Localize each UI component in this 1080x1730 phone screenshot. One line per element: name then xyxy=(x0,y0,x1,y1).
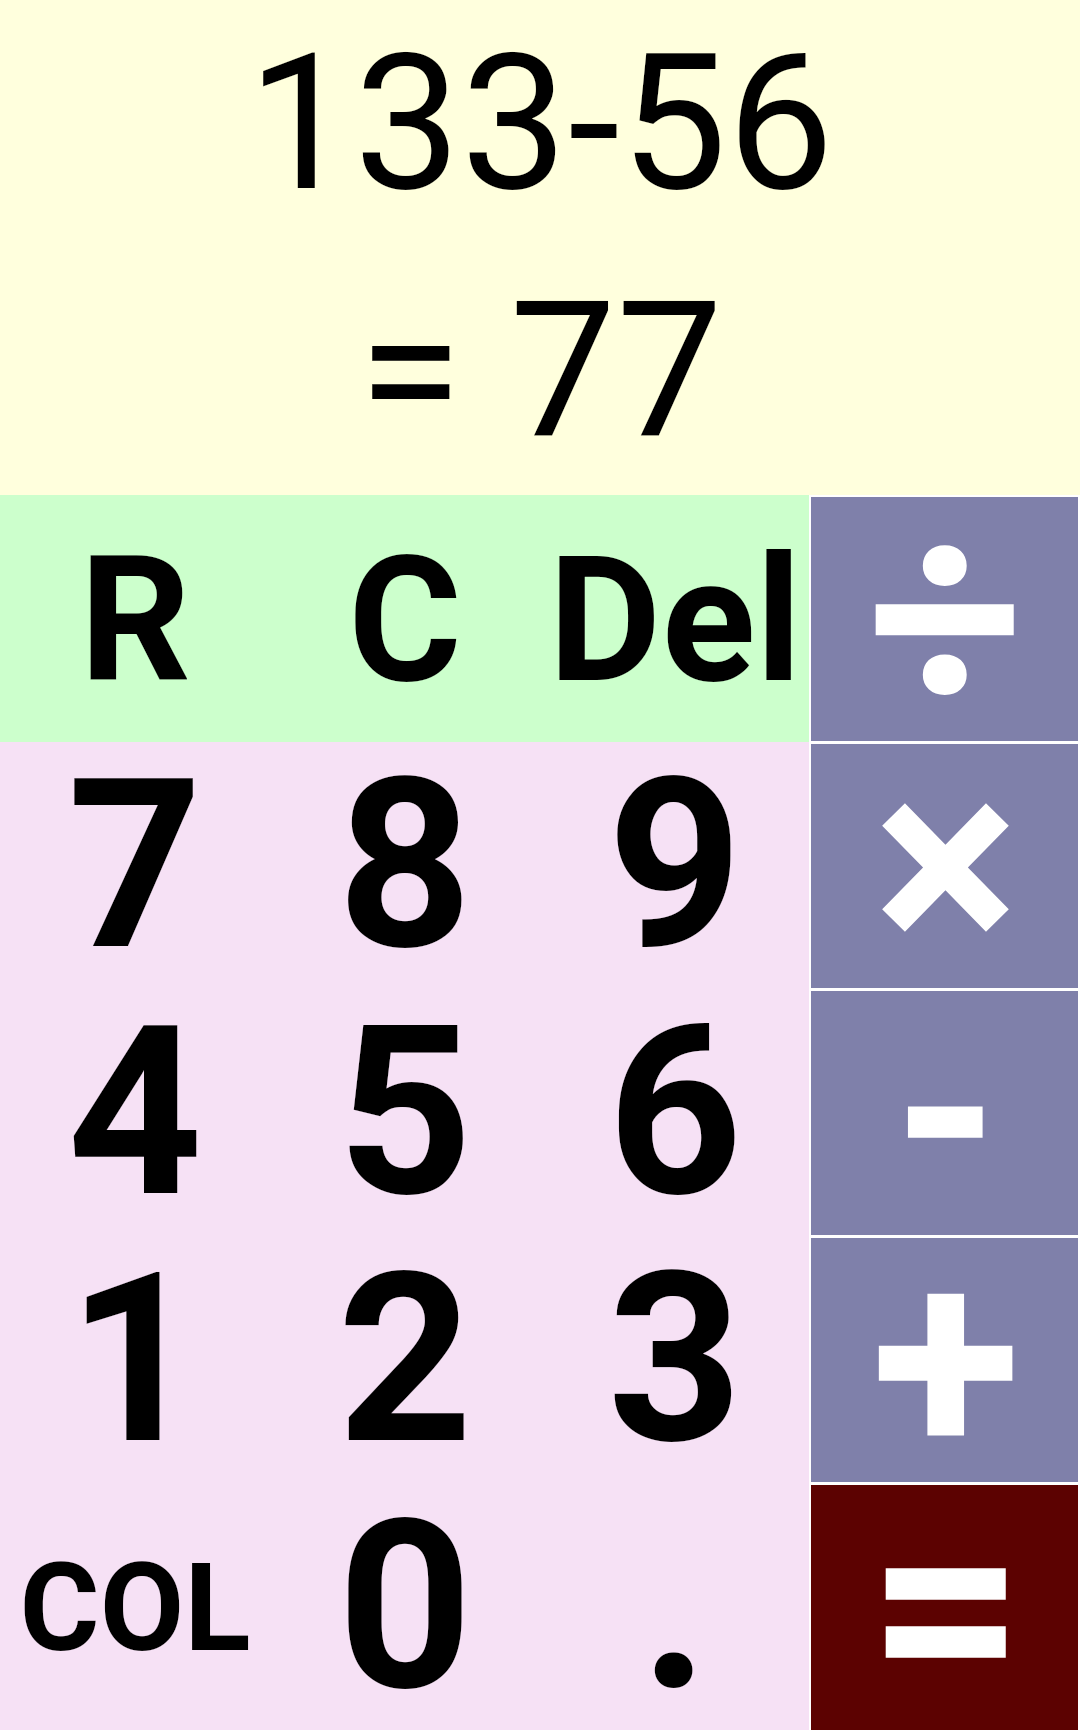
button[interactable]: 8 xyxy=(270,742,540,989)
staticText: 0 xyxy=(337,1468,473,1730)
staticText: = 77 xyxy=(358,260,723,483)
button[interactable]: Divide xyxy=(811,495,1080,742)
staticText: Del xyxy=(548,519,802,723)
button[interactable]: 6 xyxy=(540,989,809,1236)
staticText: - xyxy=(893,953,999,1272)
button[interactable]: Equals xyxy=(811,1483,1080,1730)
button[interactable]: 4 xyxy=(0,989,270,1236)
button[interactable]: 1 xyxy=(0,1236,270,1483)
staticText: C xyxy=(348,519,462,723)
staticText: 2 xyxy=(337,1221,473,1498)
staticText: 7 xyxy=(67,727,203,1004)
staticText: 133-56 xyxy=(247,12,834,235)
staticText: 4 xyxy=(67,974,203,1251)
staticText: 9 xyxy=(607,727,743,1004)
staticText: × xyxy=(873,706,1019,1026)
button[interactable]: 5 xyxy=(270,989,540,1236)
staticText: 3 xyxy=(607,1221,743,1498)
button[interactable]: Del xyxy=(540,495,809,742)
button[interactable]: 0 xyxy=(270,1483,540,1730)
staticText: 8 xyxy=(337,727,473,1004)
staticText: 1 xyxy=(67,1221,203,1498)
button[interactable]: Multiply xyxy=(811,742,1080,989)
button[interactable]: R xyxy=(0,495,270,742)
staticText: R xyxy=(79,519,191,723)
button[interactable]: . xyxy=(540,1483,809,1730)
staticText: 5 xyxy=(337,974,473,1251)
staticText: 6 xyxy=(607,974,743,1251)
button[interactable]: C xyxy=(270,495,540,742)
staticText: COL xyxy=(19,1536,251,1680)
button[interactable]: Subtract xyxy=(811,989,1080,1236)
staticText: + xyxy=(871,1201,1021,1522)
button[interactable]: 2 xyxy=(270,1236,540,1483)
button[interactable]: 3 xyxy=(540,1236,809,1483)
staticText: ÷ xyxy=(867,457,1024,779)
staticText: . xyxy=(640,1468,709,1730)
button[interactable]: 7 xyxy=(0,742,270,989)
staticText: = xyxy=(867,1445,1025,1730)
button[interactable]: Add xyxy=(811,1236,1080,1483)
button[interactable]: COL xyxy=(0,1483,270,1730)
button[interactable]: 9 xyxy=(540,742,809,989)
